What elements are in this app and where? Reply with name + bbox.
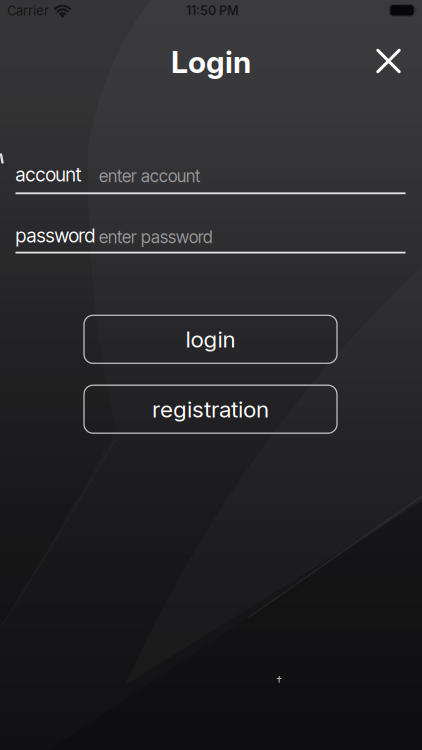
button[interactable] (366, 39, 410, 83)
staticText: registration (152, 396, 269, 423)
button[interactable]: registration (84, 385, 337, 433)
staticText: login (185, 326, 235, 353)
staticText: Carrier (7, 3, 49, 19)
staticText: account (15, 163, 81, 186)
staticText: 11:50 PM (186, 3, 239, 18)
staticText: password (15, 224, 95, 247)
button[interactable]: login (84, 315, 337, 363)
staticText: enter password (99, 227, 213, 247)
staticText: † (276, 674, 282, 689)
staticText: Login (171, 44, 251, 80)
staticText: enter account (99, 166, 200, 186)
